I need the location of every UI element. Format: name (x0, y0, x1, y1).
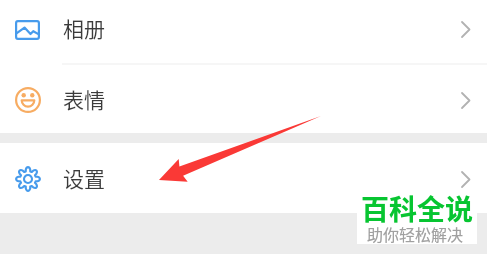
staticText: 表情 (63, 84, 105, 114)
staticText: 百科全说 (361, 188, 474, 229)
button[interactable]: Album (0, 0, 487, 63)
staticText: 助你轻松解决 (367, 222, 464, 245)
other: Settings (15, 166, 41, 192)
staticText: 设置 (63, 163, 105, 193)
other: Album (15, 20, 40, 40)
button[interactable]: Settings (0, 143, 487, 213)
staticText: 相册 (63, 13, 105, 43)
other: Stickers (15, 87, 41, 113)
button[interactable]: Stickers (0, 65, 487, 133)
